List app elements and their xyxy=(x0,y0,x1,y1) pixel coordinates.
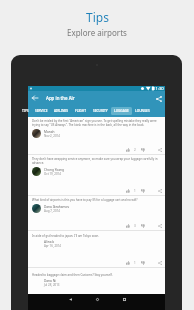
button[interactable]: Dislike xyxy=(139,187,146,194)
button[interactable]: Share tip xyxy=(156,222,163,229)
button[interactable]: TIPS xyxy=(19,105,32,117)
staticText: Explore airports xyxy=(67,27,127,38)
staticText: 11:30 xyxy=(153,86,164,91)
button[interactable]: LUGGAGE xyxy=(111,105,132,117)
button[interactable]: Share tip xyxy=(156,259,163,266)
button[interactable]: Like xyxy=(124,187,131,194)
button[interactable]: SERVICE xyxy=(32,105,51,117)
staticText: Don't be misled by the first "American" … xyxy=(32,119,162,127)
button[interactable]: Back xyxy=(29,92,41,104)
button[interactable]: They don't have wrapping service anymore… xyxy=(28,155,165,195)
staticText: 1 xyxy=(134,261,136,265)
button[interactable]: LOUNGES xyxy=(132,105,153,117)
staticText: LOUNGES xyxy=(135,109,150,113)
staticText: Jul 28, 2013 xyxy=(44,283,60,287)
staticText: Aug 7, 2014 xyxy=(44,209,60,213)
staticText: 1 xyxy=(134,189,136,193)
staticText: SERVICE xyxy=(35,109,48,113)
button[interactable]: Dislike xyxy=(139,259,146,266)
staticText: Alina b xyxy=(44,240,55,244)
staticText: 3 xyxy=(134,224,136,228)
button[interactable]: Like xyxy=(124,146,131,153)
staticText: Chong Yoang xyxy=(44,168,64,172)
button[interactable]: Headed to baggage claim and then Customs… xyxy=(28,268,165,304)
button[interactable]: Like xyxy=(124,222,131,229)
button[interactable]: Recents xyxy=(117,294,131,304)
button[interactable]: SECURITY xyxy=(90,105,111,117)
button[interactable]: Dislike xyxy=(139,222,146,229)
button[interactable]: Don't be misled by the first "American" … xyxy=(28,117,165,154)
staticText: 2 xyxy=(134,148,136,152)
button[interactable]: In aide of gst headed to japan. I'll am … xyxy=(28,231,165,267)
button[interactable]: AIRLINES xyxy=(51,105,72,117)
button[interactable]: Like xyxy=(124,259,131,266)
staticText: TIPS xyxy=(22,109,29,113)
staticText: Oct 19, 2014 xyxy=(44,172,61,176)
staticText: SECURITY xyxy=(93,109,108,113)
button[interactable]: FLIGHT xyxy=(72,105,90,117)
staticText: LUGGAGE xyxy=(114,109,129,113)
button[interactable]: What kind of airports is this you have t… xyxy=(28,196,165,230)
staticText: Tips xyxy=(86,9,109,25)
staticText: Manah xyxy=(44,130,55,134)
staticText: They don't have wrapping service anymore… xyxy=(32,157,162,165)
button[interactable]: Home xyxy=(90,294,104,304)
button[interactable]: Back xyxy=(63,294,77,304)
staticText: Apr 16, 2014 xyxy=(44,244,62,248)
staticText: AIRLINES xyxy=(54,109,69,113)
button[interactable]: Dislike xyxy=(139,146,146,153)
staticText: FLIGHT xyxy=(75,109,87,113)
staticText: Dana Ibrahamov xyxy=(44,205,70,209)
staticText: Nov 2, 2014 xyxy=(44,134,60,138)
staticText: In aide of gst headed to japan. I'll am … xyxy=(32,234,100,238)
button[interactable]: Share tip xyxy=(156,146,163,153)
staticText: App in the Air xyxy=(46,95,75,101)
button[interactable]: Like xyxy=(124,296,131,303)
button[interactable]: Share xyxy=(153,93,164,104)
button[interactable]: Share tip xyxy=(156,187,163,194)
staticText: Headed to baggage claim and then Customs… xyxy=(32,273,113,277)
staticText: Dana Ni xyxy=(44,279,56,283)
staticText: What kind of airports is this you have t… xyxy=(32,198,138,202)
